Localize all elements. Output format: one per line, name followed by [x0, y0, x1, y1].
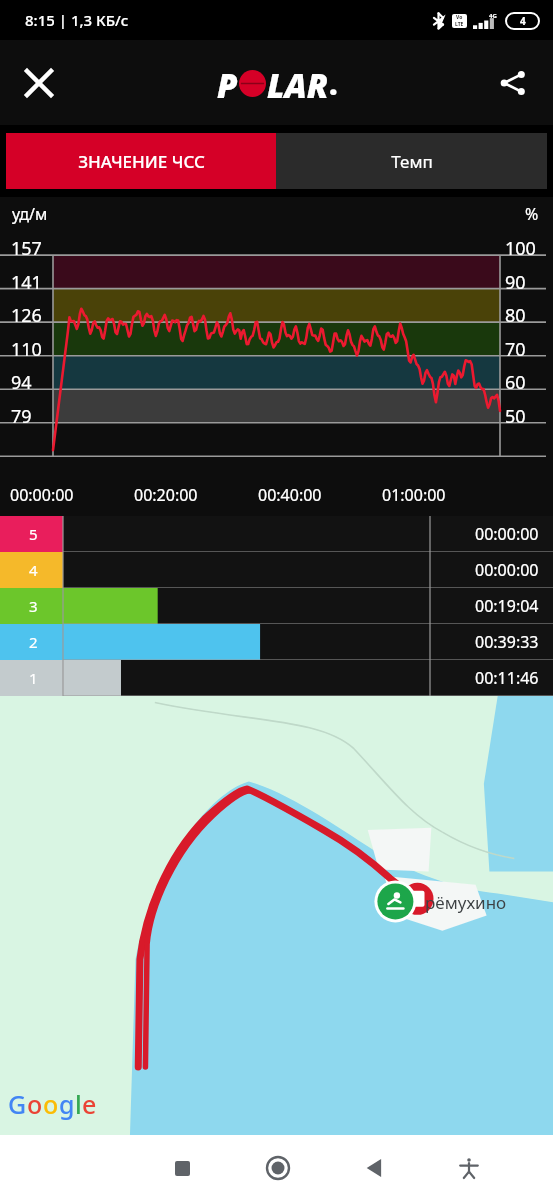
staticText: 90 [505, 270, 526, 295]
staticText: 00:19:04 [475, 595, 539, 617]
staticText: 4 [29, 560, 38, 580]
button[interactable]: 4 [0, 552, 553, 588]
staticText: рёмухино [425, 891, 507, 914]
button[interactable]: 1 [0, 660, 553, 696]
staticText: 126 [11, 303, 42, 328]
button[interactable]: Home [249, 1139, 307, 1197]
button[interactable]: Recents [153, 1139, 211, 1197]
staticText: 157 [11, 236, 42, 261]
button[interactable]: Close [10, 54, 68, 112]
button[interactable]: 2 [0, 624, 553, 660]
staticText: 79 [11, 404, 32, 429]
button[interactable]: Темп [276, 133, 547, 189]
staticText: 80 [505, 303, 526, 328]
staticText: 5 [29, 524, 38, 544]
staticText: 8:15 | 1,3 КБ/с [25, 10, 129, 30]
staticText: 110 [11, 337, 42, 362]
staticText: уд/м [12, 203, 48, 225]
staticText: LTE [455, 21, 464, 28]
staticText: 2 [29, 632, 38, 652]
button[interactable]: Share [485, 55, 541, 111]
staticText: 70 [505, 337, 526, 362]
staticText: 60 [505, 370, 526, 395]
button[interactable]: 5 [0, 516, 553, 552]
staticText: ЗНАЧЕНИЕ ЧСС [78, 150, 205, 173]
button[interactable]: ЗНАЧЕНИЕ ЧСС [6, 133, 276, 189]
staticText: 00:20:00 [134, 484, 198, 506]
staticText: G [8, 1087, 27, 1121]
staticText: o [27, 1087, 43, 1121]
staticText: P [217, 63, 238, 103]
staticText: . [329, 63, 338, 103]
staticText: 00:00:00 [475, 559, 539, 581]
staticText: l [75, 1087, 82, 1121]
button[interactable]: рёмухино [0, 696, 553, 1135]
button[interactable]: Back [344, 1139, 402, 1197]
staticText: 1 [29, 668, 38, 688]
staticText: 100 [505, 236, 536, 261]
staticText: 4 [520, 14, 526, 28]
staticText: 00:00:00 [475, 523, 539, 545]
staticText: 141 [11, 270, 42, 295]
staticText: 01:00:00 [382, 484, 446, 506]
staticText: 00:39:33 [475, 631, 539, 653]
staticText: 00:00:00 [10, 484, 74, 506]
button[interactable]: Accessibility [440, 1139, 498, 1197]
staticText: LAR [267, 63, 329, 103]
staticText: 00:11:46 [475, 667, 539, 689]
staticText: 50 [505, 404, 526, 429]
button[interactable]: 3 [0, 588, 553, 624]
staticText: Vo [456, 14, 463, 21]
staticText: 00:40:00 [258, 484, 322, 506]
staticText: % [525, 203, 539, 225]
staticText: 94 [11, 370, 32, 395]
staticText: g [59, 1087, 75, 1121]
staticText: 3 [29, 596, 38, 616]
staticText: e [82, 1087, 97, 1121]
staticText: 4G [489, 12, 497, 20]
staticText: o [43, 1087, 59, 1121]
staticText: Темп [391, 150, 433, 173]
